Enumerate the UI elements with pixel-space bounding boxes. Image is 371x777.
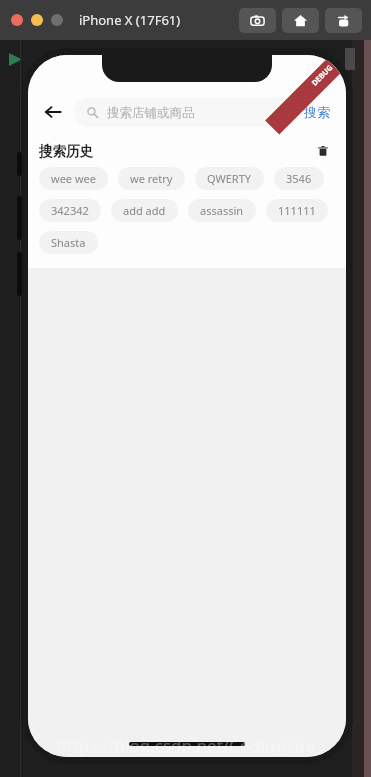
button[interactable]: Clear search history [313, 141, 333, 161]
button[interactable]: Back [37, 96, 69, 128]
button[interactable]: wee wee [39, 167, 108, 190]
staticText: 111111 [278, 203, 316, 218]
staticText: 342342 [51, 203, 89, 218]
staticText: 搜索店铺或商品 [107, 105, 195, 121]
button[interactable]: assassin [188, 199, 256, 222]
staticText: 3546 [286, 171, 312, 186]
button[interactable]: add add [111, 199, 178, 222]
button[interactable]: Screenshot [239, 8, 276, 33]
staticText: assassin [200, 203, 244, 218]
button[interactable]: Rotate [325, 8, 362, 33]
button[interactable]: 342342 [39, 199, 101, 222]
staticText: https://blog.csdn.net/CodingFire [56, 734, 316, 757]
button[interactable]: 搜索 [297, 99, 337, 125]
staticText: DEBUG [309, 62, 335, 88]
staticText: we retry [130, 171, 173, 186]
staticText: iPhone X (17F61) [79, 11, 181, 29]
button[interactable]: Home [282, 8, 319, 33]
staticText: 搜索 [304, 104, 330, 120]
staticText: add add [123, 203, 166, 218]
staticText: 搜索历史 [39, 143, 93, 160]
button[interactable]: QWERTY [195, 167, 264, 190]
button[interactable]: 111111 [266, 199, 328, 222]
button[interactable]: Shasta [39, 231, 98, 254]
button[interactable]: 搜索店铺或商品 [74, 98, 297, 127]
staticText: wee wee [51, 171, 96, 186]
button[interactable]: 3546 [274, 167, 324, 190]
staticText: QWERTY [207, 171, 252, 186]
staticText: Shasta [51, 235, 86, 250]
button[interactable]: we retry [118, 167, 185, 190]
